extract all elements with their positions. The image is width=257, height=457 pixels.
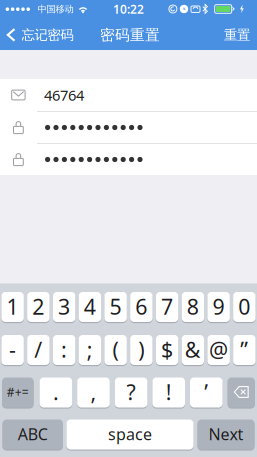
button[interactable]: Next — [197, 419, 254, 450]
button[interactable]: ABC — [2, 419, 63, 450]
button[interactable]: #+= — [2, 377, 34, 408]
staticText: 0 — [238, 292, 250, 321]
staticText: - — [9, 335, 16, 364]
staticText: 5 — [110, 292, 122, 321]
button[interactable]: / — [27, 334, 50, 365]
button[interactable]: ! — [152, 377, 185, 408]
staticText: 中国移动 — [37, 3, 73, 15]
button[interactable]: 重置 — [206, 20, 250, 50]
staticText: 忘记密码 — [21, 27, 73, 43]
button[interactable]: 7 — [156, 291, 178, 322]
staticText: 3 — [58, 292, 70, 321]
staticText: $ — [161, 335, 173, 364]
staticText: @ — [209, 335, 228, 364]
button[interactable]: . — [40, 377, 72, 408]
button[interactable]: ” — [233, 334, 256, 365]
button[interactable]: 1 — [1, 291, 24, 322]
staticText: 6 — [135, 292, 147, 321]
staticText: ? — [127, 378, 136, 406]
button[interactable] — [0, 144, 257, 175]
staticText: 9 — [213, 292, 225, 321]
button[interactable]: 9 — [207, 291, 230, 322]
button[interactable]: ? — [115, 377, 147, 408]
staticText: 4 — [84, 292, 96, 321]
button[interactable]: 0 — [233, 291, 256, 322]
button[interactable]: ( — [104, 334, 127, 365]
staticText: space — [108, 423, 152, 445]
staticText: 8 — [187, 292, 199, 321]
button[interactable]: 6 — [130, 291, 153, 322]
staticText: 密码重置 — [100, 26, 160, 44]
staticText: , — [90, 378, 96, 406]
button[interactable]: : — [53, 334, 75, 365]
button[interactable]: ’ — [190, 377, 223, 408]
button[interactable]: 8 — [182, 291, 204, 322]
staticText: / — [34, 335, 42, 364]
button[interactable]: 忘记密码 — [6, 20, 86, 50]
button[interactable]: 5 — [104, 291, 127, 322]
button[interactable]: - — [1, 334, 24, 365]
staticText: ) — [138, 335, 144, 364]
staticText: 46764 — [44, 85, 84, 105]
staticText: Next — [208, 423, 243, 445]
staticText: ! — [166, 378, 172, 406]
staticText: . — [53, 378, 59, 406]
button[interactable]: 46764 — [0, 79, 257, 111]
button[interactable]: 2 — [27, 291, 50, 322]
staticText: 7 — [161, 292, 173, 321]
staticText: 1 — [7, 292, 19, 321]
button[interactable]: 4 — [79, 291, 101, 322]
button[interactable]: & — [182, 334, 204, 365]
button[interactable]: 3 — [53, 291, 75, 322]
button[interactable]: $ — [156, 334, 178, 365]
staticText: ( — [113, 335, 119, 364]
button[interactable]: space — [66, 419, 193, 450]
button[interactable]: @ — [207, 334, 230, 365]
staticText: 重置 — [224, 27, 250, 43]
button[interactable]: ) — [130, 334, 153, 365]
staticText: & — [185, 335, 201, 364]
staticText: 2 — [32, 292, 44, 321]
staticText: ’ — [204, 378, 208, 406]
button[interactable]: ; — [79, 334, 101, 365]
staticText: #+= — [7, 384, 29, 400]
staticText: ABC — [18, 423, 48, 445]
staticText: ; — [87, 335, 93, 364]
staticText: 10:22 — [113, 1, 144, 17]
button[interactable] — [0, 112, 257, 143]
staticText: : — [61, 335, 67, 364]
staticText: ” — [240, 335, 248, 364]
button[interactable]: Delete — [228, 377, 255, 408]
button[interactable]: , — [77, 377, 110, 408]
